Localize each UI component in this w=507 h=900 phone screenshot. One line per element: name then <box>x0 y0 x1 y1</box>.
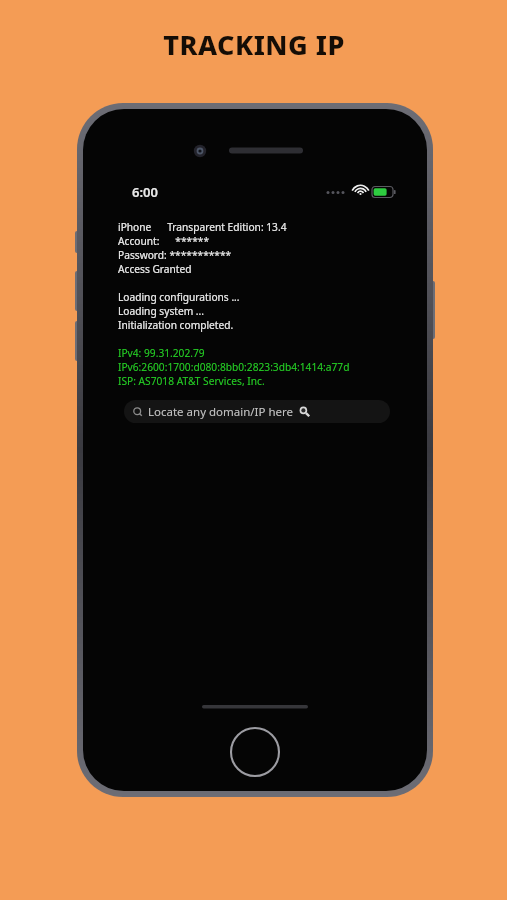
staticText: IPv6:2600:1700:d080:8bb0:2823:3db4:1414:… <box>118 360 350 374</box>
staticText: Locate any domain/IP here <box>148 404 294 420</box>
staticText: Access Granted <box>118 262 192 276</box>
staticText: 6:00 <box>132 183 158 201</box>
staticText: Initialization completed. <box>118 318 234 332</box>
button[interactable]: Home <box>231 728 279 776</box>
staticText: Loading configurations ... <box>118 290 240 304</box>
staticText: IPv4: 99.31.202.79 <box>118 346 205 360</box>
button[interactable]: Locate any domain/IP here <box>124 400 390 423</box>
staticText: Account: ****** <box>118 234 210 248</box>
staticText: Password: *********** <box>118 248 232 262</box>
staticText: ISP: AS7018 AT&T Services, Inc. <box>118 374 265 388</box>
staticText: iPhone Transparent Edition: 13.4 <box>118 220 287 234</box>
staticText: Loading system ... <box>118 304 205 318</box>
staticText: TRACKING IP <box>163 26 345 63</box>
